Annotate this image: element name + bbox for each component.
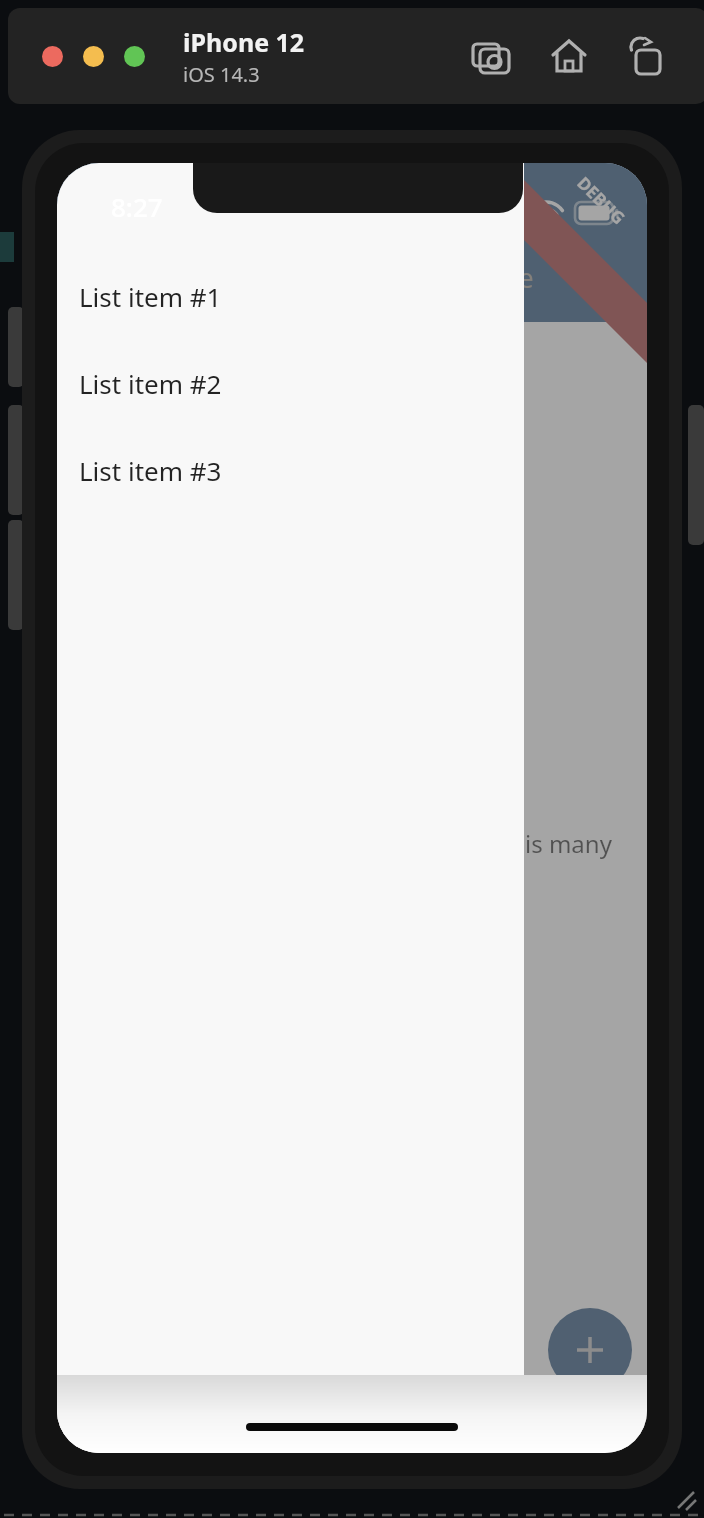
staticText: List item #2 <box>79 366 222 401</box>
button[interactable]: Close <box>42 46 63 67</box>
staticText: List item #1 <box>79 279 222 314</box>
button[interactable]: List item #1 <box>57 253 524 340</box>
button[interactable]: Home <box>541 28 597 84</box>
button[interactable]: Screenshot <box>463 28 519 84</box>
staticText: iPhone 12 <box>183 25 305 59</box>
staticText: DEBUG <box>572 171 630 229</box>
button[interactable]: List item #3 <box>57 427 524 514</box>
button[interactable]: List item #2 <box>57 340 524 427</box>
staticText: List item #3 <box>79 453 222 488</box>
button[interactable]: Zoom <box>124 46 145 67</box>
button[interactable]: Rotate <box>619 28 675 84</box>
button[interactable]: Minimize <box>83 46 104 67</box>
button[interactable]: Add <box>548 1308 632 1392</box>
staticText: iOS 14.3 <box>183 61 260 88</box>
staticText: Home <box>457 259 534 296</box>
staticText: You have pushed the button this many tim… <box>177 827 647 893</box>
